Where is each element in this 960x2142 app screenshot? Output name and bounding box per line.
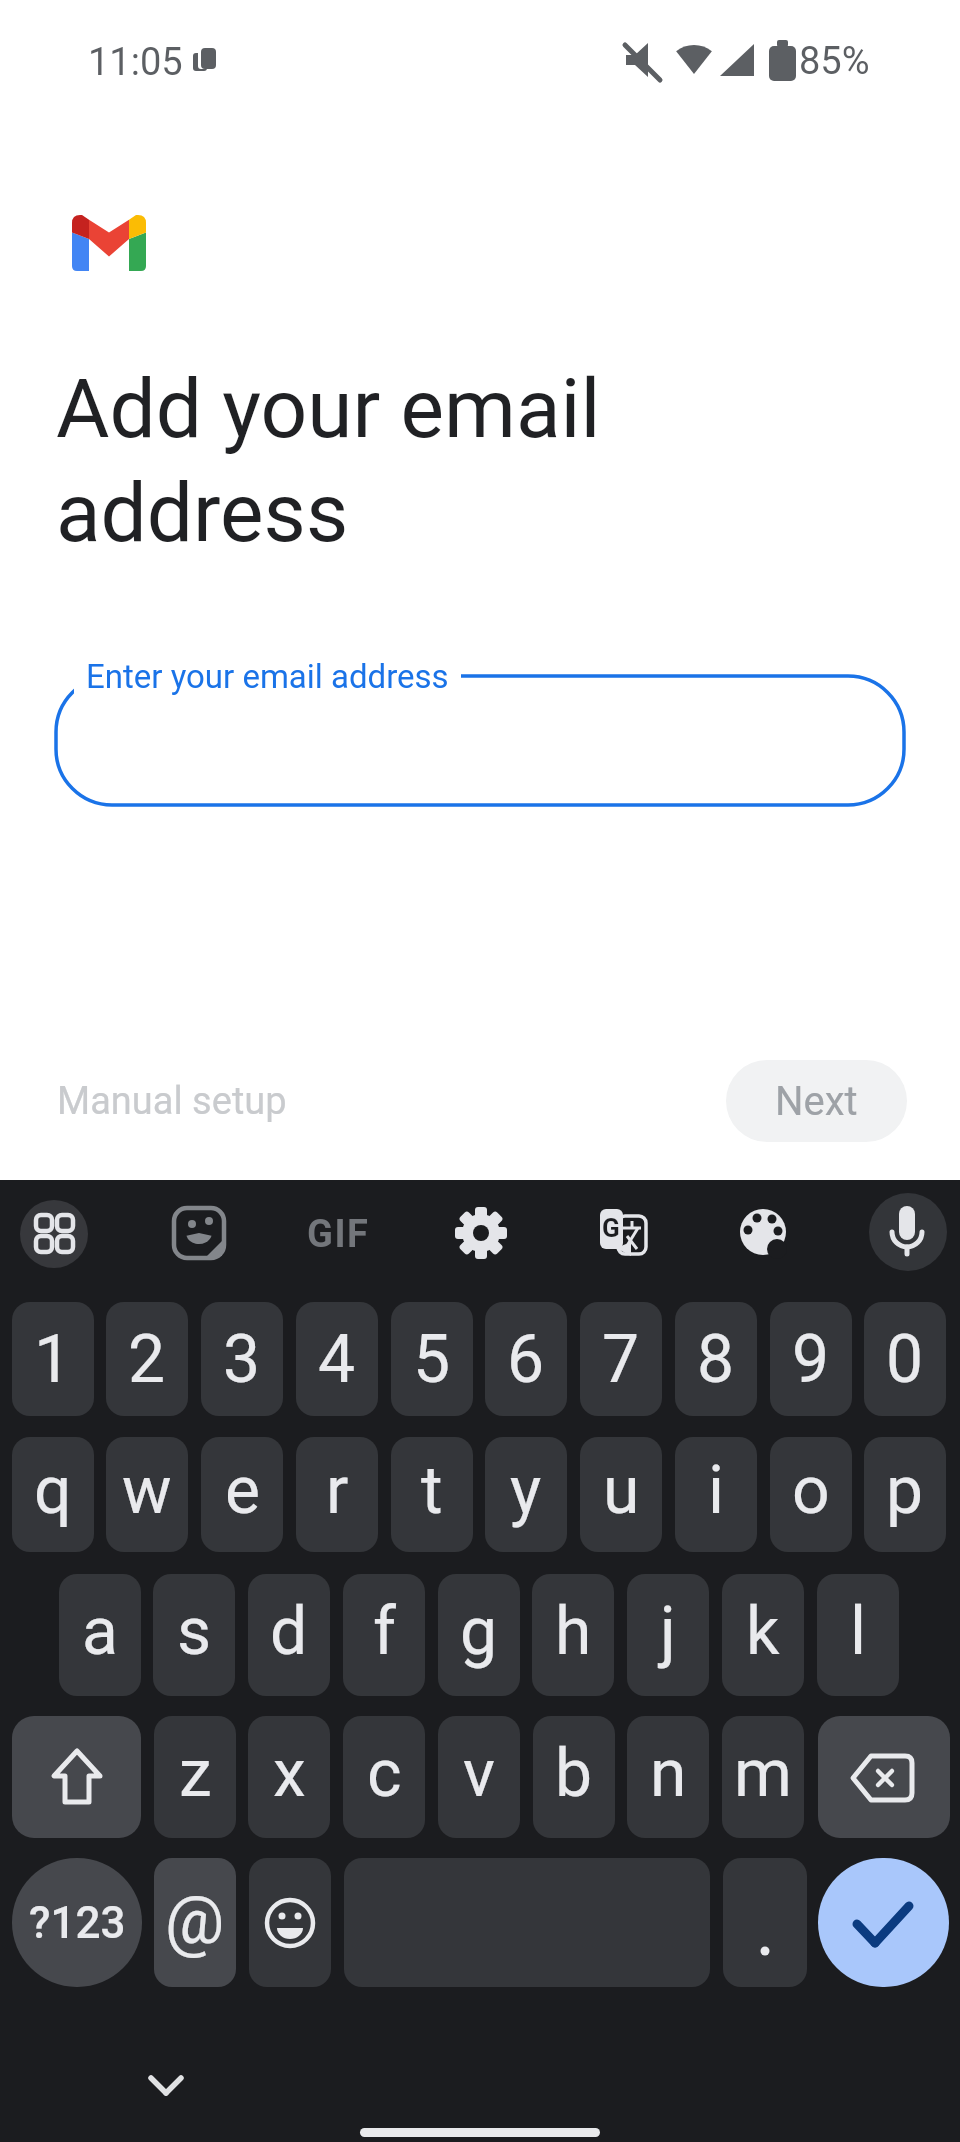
staticText: t: [421, 1452, 443, 1529]
button[interactable]: r: [296, 1437, 378, 1552]
staticText: m: [734, 1735, 792, 1812]
staticText: Enter your email address: [86, 657, 449, 696]
button[interactable]: 4: [296, 1302, 378, 1416]
staticText: d: [270, 1593, 308, 1670]
staticText: 9: [792, 1321, 830, 1398]
staticText: u: [603, 1452, 640, 1529]
staticText: 85%: [799, 39, 870, 84]
button[interactable]: x: [248, 1716, 330, 1838]
button[interactable]: [818, 1716, 950, 1838]
button[interactable]: k: [722, 1574, 804, 1696]
button[interactable]: f: [343, 1574, 425, 1696]
staticText: z: [179, 1735, 212, 1812]
button[interactable]: [594, 1205, 652, 1263]
staticText: ?123: [29, 1897, 126, 1949]
staticText: i: [708, 1452, 725, 1529]
button[interactable]: Manual setup: [50, 1070, 280, 1115]
staticText: G: [602, 1213, 620, 1243]
staticText: k: [746, 1593, 780, 1670]
button[interactable]: n: [627, 1716, 709, 1838]
button[interactable]: t: [391, 1437, 473, 1552]
button[interactable]: [12, 1716, 141, 1838]
staticText: 6: [507, 1321, 545, 1398]
staticText: j: [660, 1593, 676, 1670]
staticText: e: [225, 1452, 260, 1529]
staticText: w: [122, 1452, 172, 1529]
staticText: n: [650, 1735, 687, 1812]
button[interactable]: h: [532, 1574, 614, 1696]
button[interactable]: [170, 1205, 228, 1263]
button[interactable]: m: [722, 1716, 804, 1838]
staticText: 11:05: [88, 40, 183, 85]
button[interactable]: [20, 1200, 88, 1268]
button[interactable]: [736, 1205, 794, 1263]
button[interactable]: z: [154, 1716, 236, 1838]
staticText: g: [460, 1593, 498, 1670]
staticText: h: [555, 1593, 592, 1670]
staticText: r: [326, 1452, 349, 1529]
staticText: Add your email address: [56, 361, 601, 561]
staticText: y: [510, 1452, 542, 1529]
staticText: GIF: [307, 1212, 370, 1257]
button[interactable]: u: [580, 1437, 662, 1552]
button[interactable]: @: [154, 1858, 236, 1987]
button[interactable]: ?123: [12, 1858, 142, 1987]
staticText: v: [463, 1735, 495, 1812]
staticText: b: [555, 1735, 593, 1812]
button[interactable]: y: [485, 1437, 567, 1552]
staticText: o: [792, 1452, 830, 1529]
staticText: @: [165, 1882, 225, 1959]
button[interactable]: 7: [580, 1302, 662, 1416]
button[interactable]: [869, 1193, 947, 1271]
button[interactable]: 8: [675, 1302, 757, 1416]
staticText: 2: [128, 1321, 166, 1398]
button[interactable]: v: [438, 1716, 520, 1838]
button[interactable]: 1: [12, 1302, 94, 1416]
staticText: a: [82, 1593, 118, 1670]
button[interactable]: 2: [106, 1302, 188, 1416]
button[interactable]: p: [864, 1437, 946, 1552]
button[interactable]: [56, 676, 904, 805]
staticText: p: [886, 1452, 924, 1529]
staticText: l: [850, 1593, 867, 1670]
button[interactable]: 9: [770, 1302, 852, 1416]
staticText: f: [373, 1593, 396, 1670]
staticText: s: [177, 1593, 212, 1670]
staticText: Next: [775, 1078, 858, 1125]
button[interactable]: 5: [391, 1302, 473, 1416]
staticText: 7: [602, 1321, 640, 1398]
button[interactable]: [818, 1858, 949, 1987]
button[interactable]: b: [533, 1716, 615, 1838]
button[interactable]: l: [817, 1574, 899, 1696]
button[interactable]: g: [438, 1574, 520, 1696]
staticText: 3: [223, 1321, 261, 1398]
button[interactable]: o: [770, 1437, 852, 1552]
button[interactable]: s: [153, 1574, 235, 1696]
staticText: 0: [886, 1321, 924, 1398]
button[interactable]: e: [201, 1437, 283, 1552]
button[interactable]: [723, 1858, 807, 1987]
staticText: 4: [318, 1321, 356, 1398]
button[interactable]: i: [675, 1437, 757, 1552]
staticText: 1: [34, 1321, 72, 1398]
button[interactable]: 3: [201, 1302, 283, 1416]
button[interactable]: w: [106, 1437, 188, 1552]
staticText: x: [273, 1735, 306, 1812]
button[interactable]: a: [59, 1574, 141, 1696]
staticText: q: [34, 1452, 72, 1529]
button[interactable]: d: [248, 1574, 330, 1696]
staticText: Manual setup: [57, 1079, 287, 1124]
staticText: 8: [697, 1321, 735, 1398]
button[interactable]: j: [627, 1574, 709, 1696]
button[interactable]: q: [12, 1437, 94, 1552]
button[interactable]: Next: [726, 1060, 907, 1142]
button[interactable]: [306, 1205, 368, 1267]
button[interactable]: 0: [864, 1302, 946, 1416]
button[interactable]: c: [343, 1716, 425, 1838]
staticText: c: [367, 1735, 402, 1812]
button[interactable]: [452, 1205, 510, 1263]
staticText: 5: [413, 1321, 451, 1398]
button[interactable]: [249, 1858, 331, 1987]
button[interactable]: 6: [485, 1302, 567, 1416]
